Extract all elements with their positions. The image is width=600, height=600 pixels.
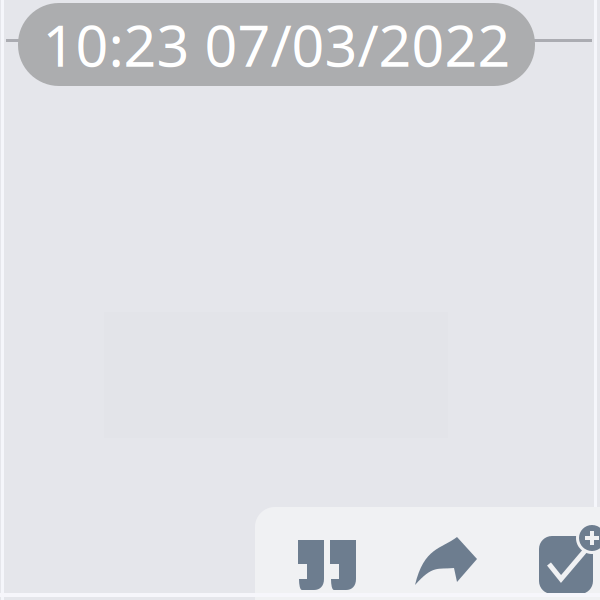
staticText: 10:23 07/03/2022: [42, 6, 510, 82]
button[interactable]: Quote: [298, 540, 358, 590]
button[interactable]: Forward: [414, 534, 479, 589]
button[interactable]: Select: [538, 528, 600, 594]
